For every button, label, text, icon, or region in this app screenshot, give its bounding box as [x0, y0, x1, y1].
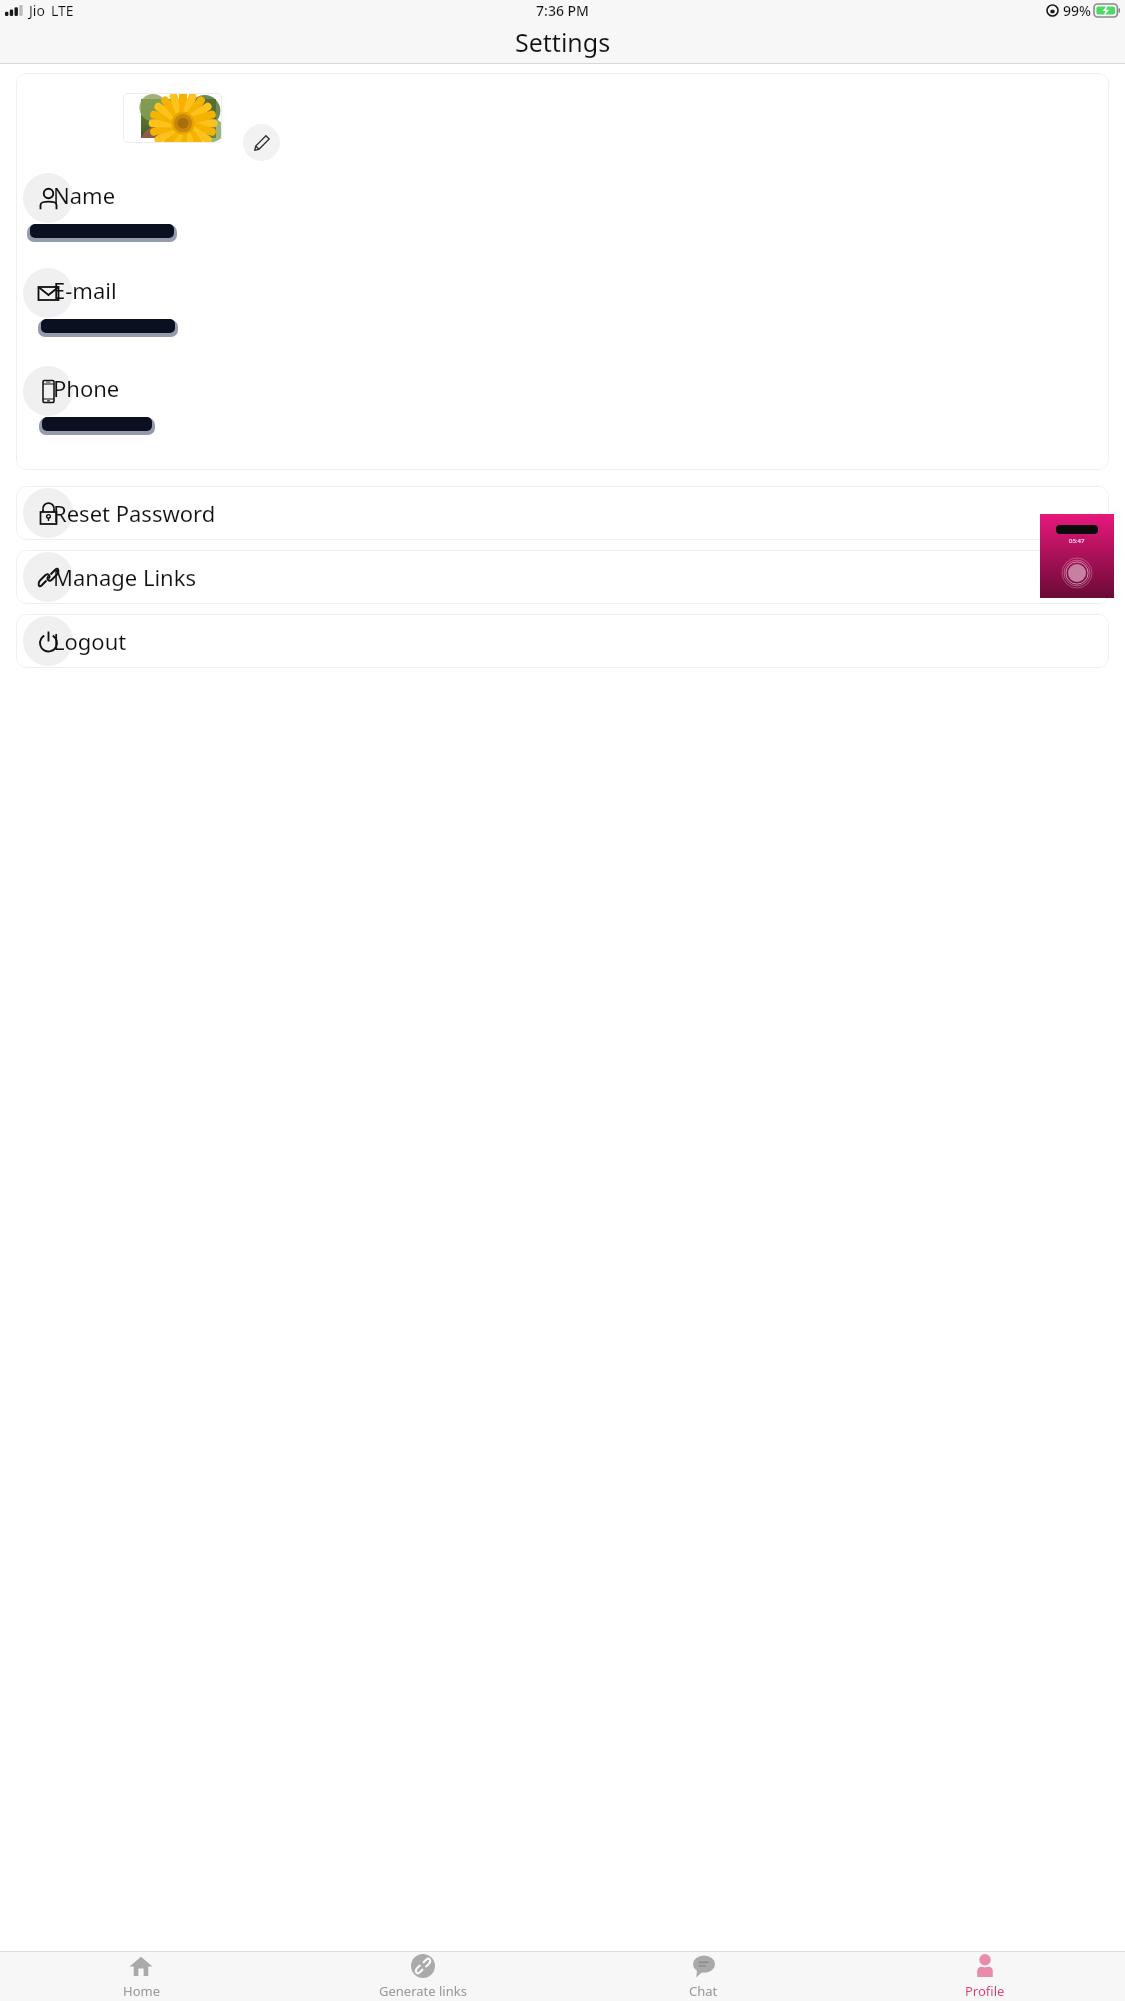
staticText: Manage Links — [53, 562, 196, 592]
button[interactable]: Screen recorder — [1040, 514, 1114, 598]
button[interactable]: Name — [16, 169, 1109, 247]
staticText: Reset Password — [53, 498, 216, 528]
staticText: Chat — [689, 1982, 718, 2000]
staticText: Logout — [53, 626, 127, 656]
button[interactable]: Generate links — [282, 1952, 563, 2001]
button[interactable]: Profile photo — [123, 93, 222, 143]
button[interactable]: Profile — [844, 1952, 1125, 2001]
button[interactable]: Edit photo — [243, 124, 280, 161]
staticText: LTE — [51, 1, 74, 20]
staticText: Generate links — [379, 1982, 467, 2000]
staticText: 7:36 PM — [536, 1, 589, 20]
staticText: Settings — [515, 25, 611, 59]
staticText: 05:47 — [1069, 537, 1085, 545]
button[interactable]: Reset Password — [16, 486, 1109, 540]
button[interactable]: E-mail — [16, 264, 1109, 342]
staticText: Profile — [965, 1982, 1005, 2000]
staticText: 99% — [1063, 1, 1091, 20]
staticText: E-mail — [53, 275, 117, 305]
staticText: Name — [53, 180, 116, 210]
button[interactable]: Logout — [16, 614, 1109, 668]
button[interactable]: Manage Links — [16, 550, 1109, 604]
staticText: Home — [123, 1982, 160, 2000]
button[interactable]: Chat — [563, 1952, 844, 2001]
button[interactable]: Phone — [16, 362, 1109, 440]
staticText: Phone — [53, 373, 120, 403]
staticText: Jio — [29, 1, 45, 20]
button[interactable]: Home — [0, 1952, 282, 2001]
